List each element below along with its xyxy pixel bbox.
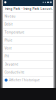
button[interactable]: PH bbox=[3, 53, 53, 61]
button[interactable]: Niveau bbox=[3, 13, 53, 21]
staticText: Pluie bbox=[4, 38, 12, 42]
staticText: Oxygene bbox=[4, 62, 18, 66]
button[interactable]: Pluie bbox=[3, 37, 53, 45]
staticText: PH bbox=[4, 54, 8, 58]
staticText: Irving Park - Irving Park Lacustre bbox=[4, 7, 53, 11]
staticText: Afficher l'historique bbox=[9, 78, 40, 82]
staticText: Vent bbox=[4, 46, 11, 50]
button[interactable]: Debit bbox=[3, 21, 53, 29]
button[interactable]: Vent bbox=[3, 45, 53, 53]
button[interactable]: Temperature bbox=[3, 29, 53, 37]
staticText: Debit bbox=[4, 22, 12, 26]
button[interactable]: Afficher l'historique bbox=[3, 77, 53, 84]
button[interactable]: Oxygene bbox=[3, 61, 53, 69]
button[interactable]: Conductivite bbox=[3, 69, 53, 77]
staticText: Niveau bbox=[4, 14, 15, 18]
staticText: Temperature bbox=[4, 30, 24, 34]
staticText: Conductivite bbox=[4, 70, 24, 74]
